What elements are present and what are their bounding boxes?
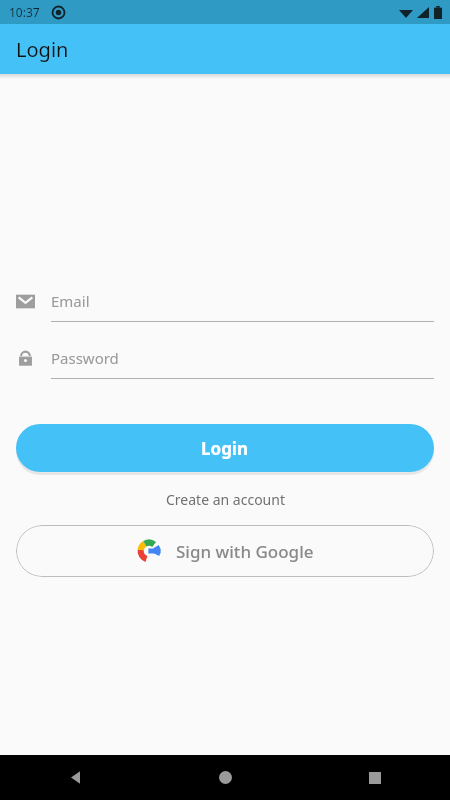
staticText: 10:37: [9, 4, 40, 20]
staticText: Email: [51, 291, 90, 311]
staticText: Sign with Google: [176, 540, 314, 563]
button[interactable]: Sign with Google: [16, 525, 434, 577]
button[interactable]: Create an account: [158, 488, 293, 511]
button[interactable]: Recent apps: [300, 755, 450, 800]
staticText: Password: [51, 348, 119, 368]
button[interactable]: Home: [150, 755, 300, 800]
staticText: Login: [201, 437, 249, 460]
button[interactable]: Back: [0, 755, 150, 800]
button[interactable]: Login: [16, 424, 434, 472]
staticText: Login: [16, 36, 69, 63]
staticText: Create an account: [166, 490, 285, 509]
